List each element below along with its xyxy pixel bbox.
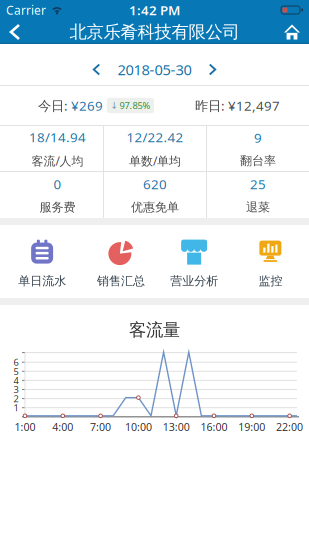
staticText: 单数/单均	[129, 153, 181, 169]
staticText: 25	[250, 175, 266, 193]
staticText: 16:00	[200, 420, 227, 434]
button[interactable]: Next day	[204, 59, 220, 79]
staticText: 19:00	[238, 420, 265, 434]
staticText: 1:42 PM	[129, 1, 180, 19]
staticText: ¥269	[71, 97, 103, 114]
staticText: 2	[13, 392, 18, 405]
staticText: 单日流水	[18, 274, 66, 288]
staticText: 7:00	[90, 420, 111, 434]
button[interactable]: Previous day	[88, 59, 104, 79]
staticText: 翻台率	[240, 153, 276, 168]
staticText: 监控	[258, 274, 282, 288]
button[interactable]: 监控	[232, 225, 309, 298]
staticText: 6	[13, 356, 18, 368]
staticText: 客流量	[129, 319, 180, 341]
staticText: 今日:	[38, 97, 71, 114]
staticText: 优惠免单	[131, 200, 179, 215]
button[interactable]: 销售汇总	[77, 225, 154, 298]
staticText: 9	[254, 129, 262, 146]
staticText: 北京乐肴科技有限公司	[69, 21, 239, 43]
staticText: 2018-05-30	[117, 60, 191, 79]
button[interactable]: Home	[277, 20, 307, 44]
staticText: 4	[13, 374, 18, 387]
staticText: 13:00	[163, 420, 190, 434]
button[interactable]: 单日流水	[0, 225, 77, 298]
staticText: 客流/人均	[31, 153, 83, 169]
staticText: 22:00	[276, 420, 303, 434]
staticText: 0	[53, 175, 61, 193]
staticText: 10:00	[125, 420, 152, 434]
staticText: 退菜	[246, 200, 270, 215]
staticText: Carrier	[6, 2, 46, 18]
button[interactable]: Back	[2, 20, 28, 44]
staticText: 销售汇总	[97, 274, 145, 288]
staticText: 620	[143, 175, 167, 193]
staticText: 昨日: ¥12,497	[195, 97, 280, 114]
button[interactable]: 营业分析	[154, 225, 232, 298]
staticText: ↓	[110, 100, 118, 111]
staticText: 97.85%	[119, 99, 150, 112]
staticText: 3	[13, 383, 18, 396]
staticText: 1	[13, 401, 18, 414]
staticText: 12/22.42	[126, 128, 183, 146]
staticText: 5	[13, 365, 18, 377]
staticText: 18/14.94	[29, 128, 86, 146]
staticText: 营业分析	[170, 274, 218, 288]
staticText: 4:00	[52, 420, 73, 434]
staticText: 1:00	[14, 420, 35, 434]
staticText: 服务费	[39, 200, 75, 215]
